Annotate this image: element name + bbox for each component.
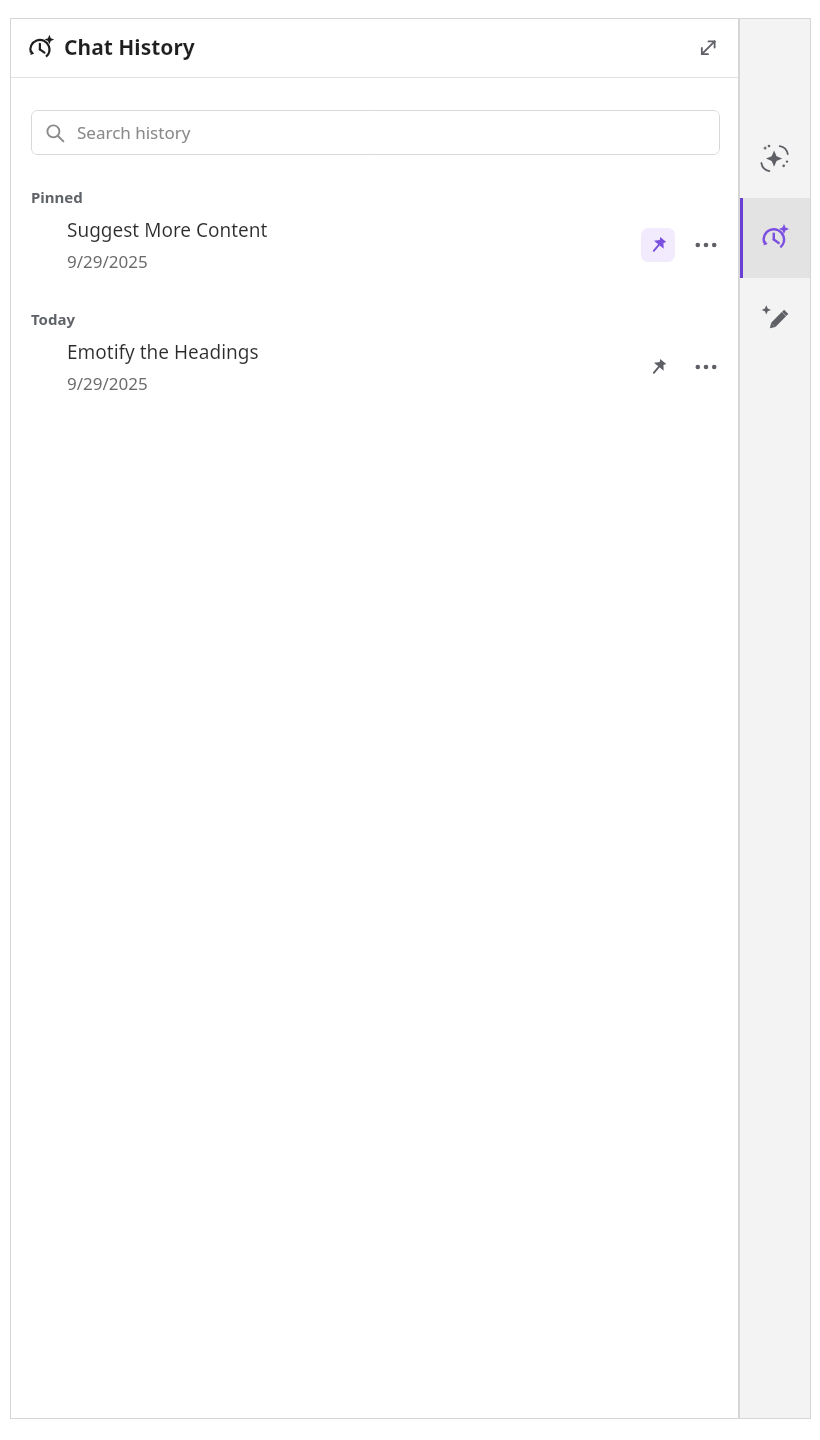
staticText: Suggest More Content <box>67 217 268 243</box>
button[interactable]: Chat history <box>739 198 811 278</box>
staticText: Chat History <box>64 33 195 62</box>
button[interactable]: Expand panel <box>691 31 725 65</box>
button[interactable]: Pin chat <box>641 350 675 384</box>
staticText: 9/29/2025 <box>67 250 148 273</box>
button[interactable]: Unpin chat <box>641 228 675 262</box>
button[interactable]: Suggest More Content <box>10 207 739 283</box>
staticText: Today <box>31 309 76 329</box>
button[interactable]: More options <box>689 228 723 262</box>
staticText: Pinned <box>31 187 83 207</box>
staticText: 9/29/2025 <box>67 372 148 395</box>
button[interactable]: More options <box>689 350 723 384</box>
button[interactable]: Magic edit <box>739 278 811 358</box>
button[interactable]: Search history <box>31 110 720 155</box>
button[interactable]: Assistant <box>739 118 811 198</box>
button[interactable]: Emotify the Headings <box>10 329 739 405</box>
staticText: Emotify the Headings <box>67 339 259 365</box>
staticText: Search history <box>77 121 191 144</box>
